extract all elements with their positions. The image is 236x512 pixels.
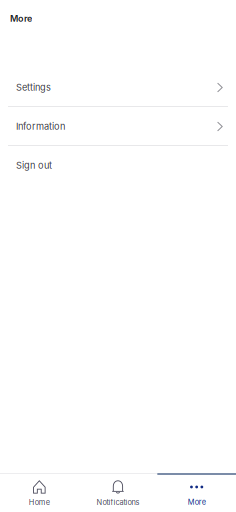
staticText: Home bbox=[29, 498, 50, 507]
button[interactable]: Notifications bbox=[79, 473, 157, 512]
button[interactable]: More bbox=[157, 473, 236, 512]
staticText: More bbox=[10, 13, 32, 24]
staticText: Notifications bbox=[96, 498, 139, 507]
button[interactable]: Home bbox=[0, 473, 79, 512]
staticText: Information bbox=[16, 121, 65, 132]
staticText: Settings bbox=[16, 82, 51, 93]
button[interactable]: Settings bbox=[0, 68, 236, 107]
staticText: More bbox=[188, 497, 206, 506]
staticText: Sign out bbox=[16, 160, 52, 171]
button[interactable]: Sign out bbox=[0, 146, 236, 185]
button[interactable]: Information bbox=[0, 107, 236, 146]
